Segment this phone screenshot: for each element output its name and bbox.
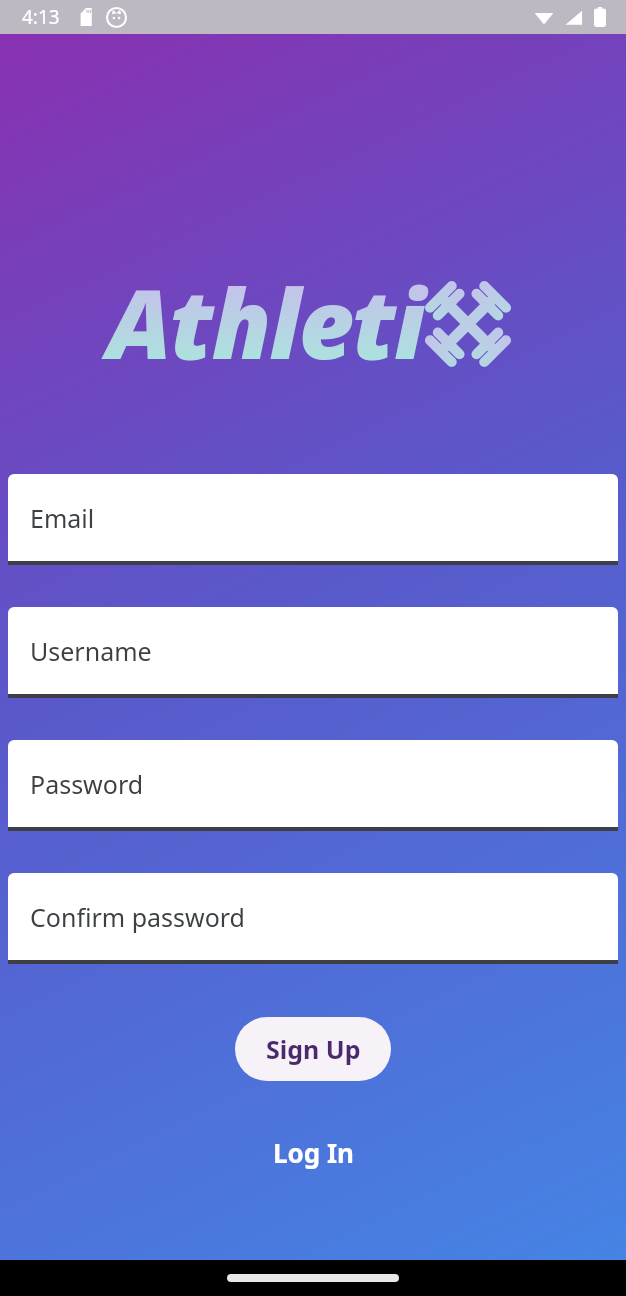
staticText: 4:13	[22, 4, 60, 30]
button[interactable]: Username	[8, 607, 618, 698]
staticText: Athleti	[107, 256, 424, 387]
staticText: Email	[30, 501, 95, 535]
staticText: Confirm password	[30, 900, 245, 934]
button[interactable]: Log In	[255, 1127, 372, 1178]
staticText: Sign Up	[266, 1032, 361, 1066]
button[interactable]: Email	[8, 474, 618, 565]
button[interactable]: Sign Up	[235, 1017, 391, 1081]
staticText: Username	[30, 634, 152, 668]
other: Athletix logo dumbbells	[420, 276, 516, 372]
staticText: Password	[30, 767, 144, 801]
staticText: Log In	[273, 1135, 354, 1170]
button[interactable]: Confirm password	[8, 873, 618, 964]
button[interactable]: Password	[8, 740, 618, 831]
